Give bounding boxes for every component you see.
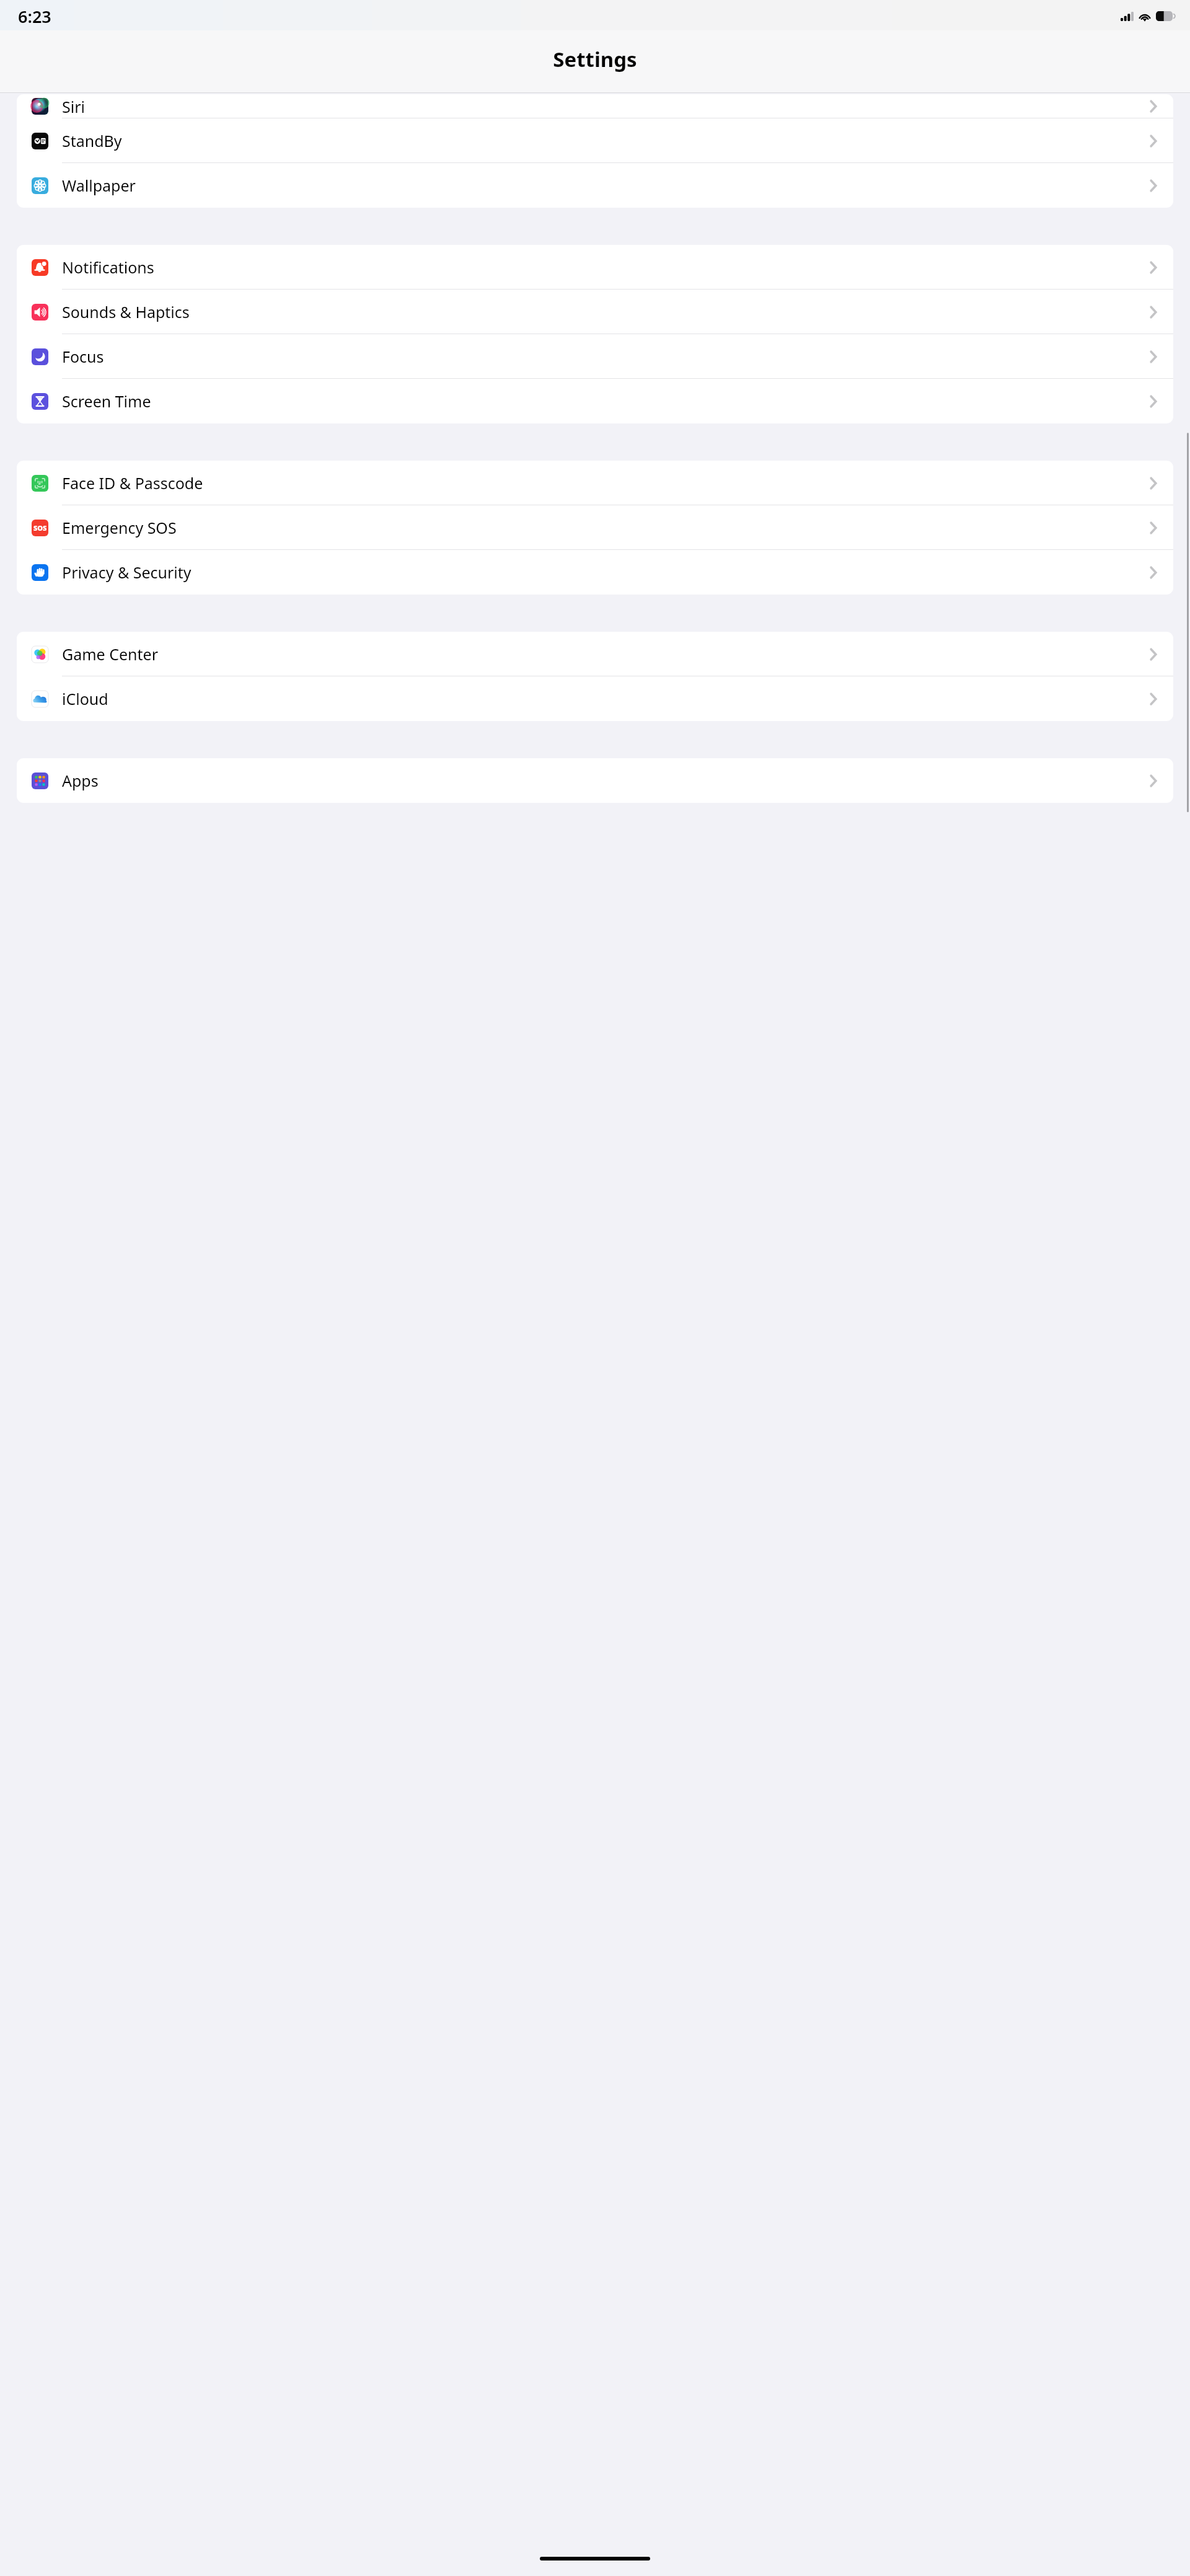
staticText: Focus (62, 346, 104, 367)
staticText: Notifications (62, 257, 154, 278)
staticText: iCloud (62, 688, 108, 709)
button[interactable]: Sounds & Haptics (17, 290, 1173, 334)
button[interactable]: Apps (17, 758, 1173, 803)
staticText: Settings (553, 45, 637, 73)
button[interactable]: iCloud (17, 676, 1173, 721)
button[interactable]: StandBy (17, 118, 1173, 163)
button[interactable]: Privacy & Security (17, 550, 1173, 595)
staticText: Game Center (62, 644, 159, 665)
staticText: Emergency SOS (62, 517, 177, 538)
staticText: StandBy (62, 130, 122, 151)
staticText: Privacy & Security (62, 562, 192, 583)
staticText: Apps (62, 770, 99, 791)
button[interactable]: Notifications (17, 245, 1173, 290)
staticText: Screen Time (62, 391, 151, 412)
button[interactable]: Wallpaper (17, 163, 1173, 208)
staticText: Wallpaper (62, 175, 136, 196)
button[interactable]: Game Center (17, 632, 1173, 676)
staticText: SOS (33, 523, 47, 533)
button[interactable]: SOS (17, 505, 1173, 550)
staticText: 6:23 (18, 5, 51, 28)
button[interactable]: Siri (17, 94, 1173, 118)
button[interactable]: Screen Time (17, 379, 1173, 423)
staticText: Sounds & Haptics (62, 301, 190, 322)
button[interactable]: Focus (17, 334, 1173, 379)
staticText: Face ID & Passcode (62, 472, 203, 494)
staticText: Siri (62, 96, 85, 117)
button[interactable]: Face ID & Passcode (17, 461, 1173, 505)
